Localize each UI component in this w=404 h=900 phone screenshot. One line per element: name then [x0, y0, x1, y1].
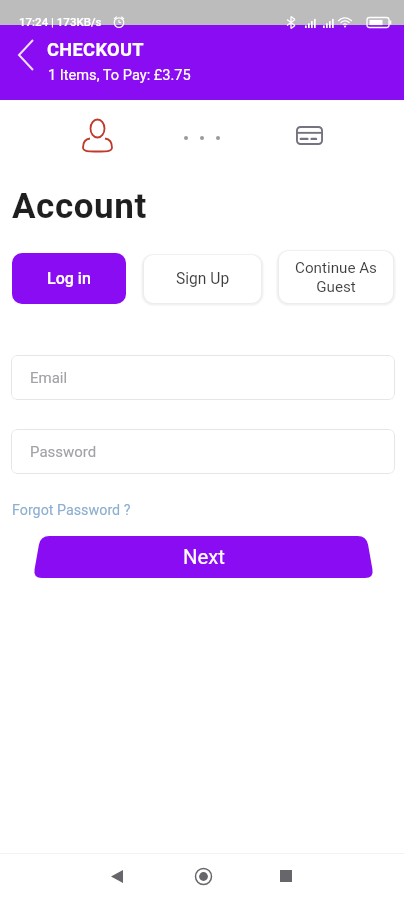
- staticText: Log in: [47, 269, 91, 288]
- staticText: 1 Items, To Pay: £3.75: [48, 66, 191, 83]
- staticText: 17:24 | 173KB/s: [19, 15, 102, 28]
- button[interactable]: Sign Up: [144, 255, 261, 303]
- button[interactable]: Back: [7, 32, 45, 77]
- button[interactable]: Recents: [266, 856, 306, 896]
- button[interactable]: Account step: [78, 116, 117, 155]
- staticText: Password: [30, 443, 97, 461]
- button[interactable]: Continue As Guest: [279, 251, 393, 303]
- button[interactable]: Home: [183, 856, 223, 896]
- staticText: Email: [30, 369, 68, 387]
- button[interactable]: Next: [33, 536, 374, 578]
- staticText: Account: [12, 186, 147, 227]
- button[interactable]: Forgot Password ?: [12, 502, 131, 519]
- button[interactable]: Email: [11, 355, 395, 400]
- staticText: Next: [183, 545, 225, 569]
- button[interactable]: Payment step: [290, 116, 329, 155]
- staticText: Sign Up: [176, 270, 230, 288]
- button[interactable]: Log in: [12, 253, 126, 304]
- button[interactable]: Password: [11, 429, 395, 474]
- button[interactable]: Back: [97, 856, 137, 896]
- staticText: Continue As Guest: [279, 259, 393, 295]
- staticText: CHECKOUT: [47, 39, 144, 60]
